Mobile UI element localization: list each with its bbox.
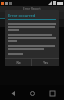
staticText: Error Report bbox=[23, 7, 41, 11]
button[interactable]: Tab bbox=[0, 12, 22, 19]
button[interactable]: Yes bbox=[32, 59, 59, 66]
button[interactable]: No bbox=[5, 59, 31, 66]
staticText: No bbox=[16, 61, 21, 65]
staticText: Yes bbox=[43, 61, 48, 65]
button[interactable]: Back bbox=[6, 86, 20, 100]
button[interactable]: Recent apps bbox=[45, 86, 59, 100]
staticText: Tab bbox=[30, 14, 35, 17]
staticText: Error occurred bbox=[8, 13, 36, 18]
button[interactable]: Tab bbox=[43, 12, 64, 19]
button[interactable]: Tab bbox=[22, 12, 43, 19]
staticText: Tab bbox=[9, 14, 14, 17]
button[interactable]: Home bbox=[25, 86, 39, 100]
